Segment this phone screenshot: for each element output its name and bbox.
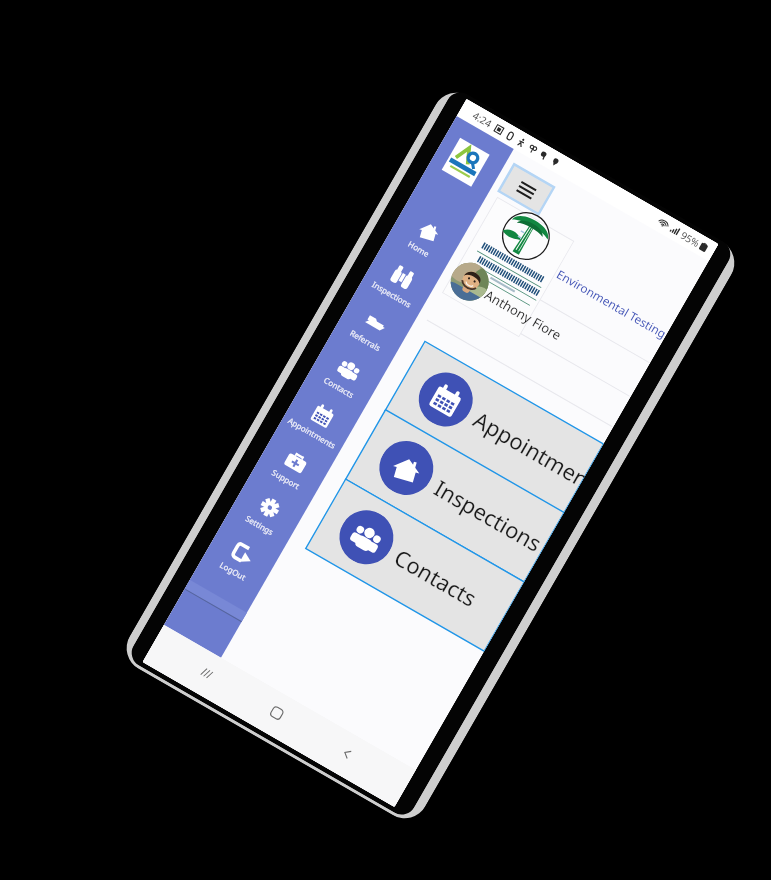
button[interactable]: Contacts [306,479,524,651]
button[interactable]: Settings [228,469,311,547]
staticText: Referrals [348,327,383,353]
button[interactable]: Home [387,192,470,270]
button[interactable]: Support [254,423,337,501]
staticText: Environmental Testing Agency [554,266,670,342]
staticText: Appointments [469,404,591,492]
button[interactable]: LogOut [201,515,284,593]
button[interactable]: Back [325,732,369,775]
staticText: Support [270,466,302,491]
button[interactable]: Appointments [385,341,603,513]
button[interactable]: Recent apps [185,651,228,694]
button[interactable]: Appointments [280,377,363,455]
staticText: Inspections [429,472,548,558]
button[interactable]: Open navigation menu [499,164,554,214]
button[interactable]: Inspections [360,238,443,316]
staticText: Home [406,238,432,259]
button[interactable]: Inspections [346,410,564,582]
staticText: 4:24 [470,108,494,130]
staticText: LogOut [218,559,249,583]
staticText: Inspections [370,278,414,310]
staticText: Contacts [322,374,356,400]
button[interactable]: Home [255,691,299,735]
staticText: Anthony Fiore [481,286,565,344]
staticText: 95% [678,228,702,250]
button[interactable]: Contacts [307,331,390,409]
button[interactable]: Referrals [334,284,417,362]
staticText: Settings [244,512,276,537]
staticText: Appointments [286,415,338,451]
staticText: Contacts [389,542,483,613]
